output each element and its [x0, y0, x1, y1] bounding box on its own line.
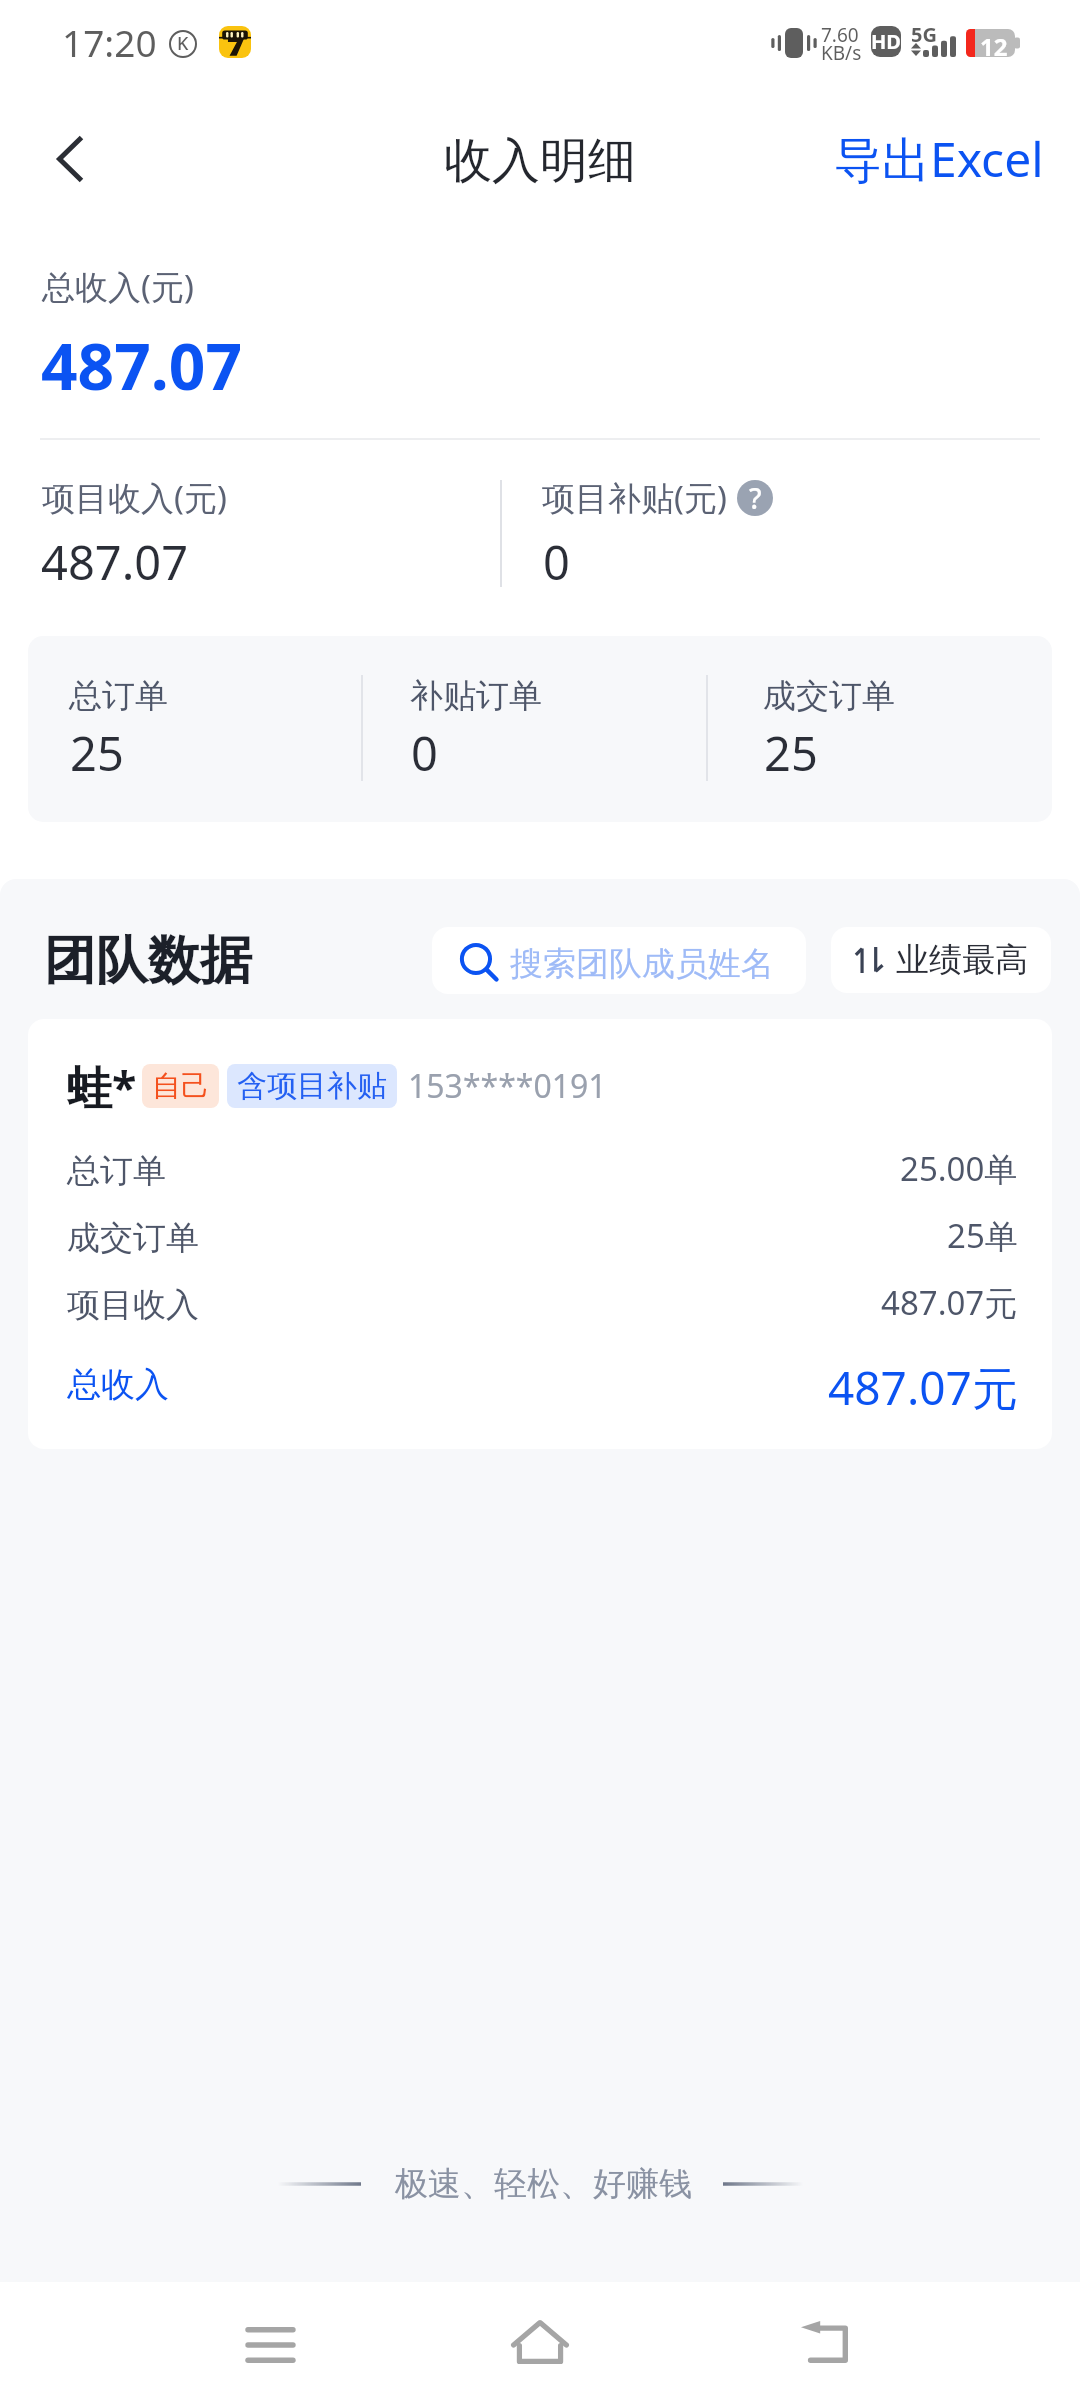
staticText: 含项目补贴: [237, 1067, 387, 1105]
staticText: 0: [411, 721, 438, 785]
staticText: 极速、轻松、好赚钱: [395, 2163, 692, 2205]
staticText: 总收入(元): [42, 264, 194, 309]
staticText: 487.07: [41, 530, 189, 594]
staticText: 补贴订单: [410, 675, 542, 717]
staticText: 成交订单: [67, 1217, 199, 1259]
staticText: 蛙*: [67, 1056, 137, 1117]
staticText: KB/s: [821, 40, 862, 66]
staticText: 总订单: [67, 1150, 166, 1192]
staticText: 成交订单: [763, 675, 895, 717]
staticText: 项目收入(元): [42, 475, 227, 520]
staticText: 487.07: [41, 322, 243, 409]
staticText: 导出Excel: [834, 126, 1044, 192]
staticText: 5G: [911, 21, 937, 48]
staticText: 项目收入: [67, 1284, 199, 1326]
staticText: 487.07元: [828, 1356, 1018, 1419]
button[interactable]: Home: [470, 2279, 610, 2405]
staticText: HD: [871, 28, 901, 55]
staticText: 团队数据: [44, 928, 252, 994]
staticText: 17:20: [62, 17, 157, 67]
button[interactable]: 导出Excel: [834, 126, 1044, 192]
staticText: 25.00单: [900, 1146, 1018, 1191]
button[interactable]: 搜索团队成员姓名: [432, 927, 806, 994]
staticText: 总收入: [67, 1363, 169, 1406]
staticText: ?: [749, 480, 762, 515]
staticText: 项目补贴(元): [542, 475, 727, 520]
staticText: 搜索团队成员姓名: [510, 943, 774, 985]
staticText: 12: [980, 30, 1008, 58]
staticText: 25单: [947, 1213, 1018, 1258]
staticText: 7.60: [821, 22, 859, 48]
staticText: 25: [70, 721, 124, 785]
button[interactable]: Back: [28, 117, 112, 201]
staticText: 25: [764, 721, 818, 785]
staticText: K: [177, 31, 189, 56]
button[interactable]: 业绩最高: [831, 927, 1051, 993]
staticText: 0: [543, 530, 570, 594]
staticText: 业绩最高: [896, 939, 1028, 981]
staticText: 收入明细: [444, 131, 636, 191]
button[interactable]: Back: [754, 2279, 894, 2405]
staticText: 自己: [152, 1068, 210, 1105]
staticText: 487.07元: [881, 1280, 1018, 1325]
button[interactable]: Subsidy help: [737, 480, 773, 516]
staticText: 总订单: [69, 675, 168, 717]
button[interactable]: Recent apps: [200, 2282, 340, 2408]
staticText: 153****0191: [408, 1064, 607, 1108]
button[interactable]: 蛙*: [28, 1019, 1052, 1449]
